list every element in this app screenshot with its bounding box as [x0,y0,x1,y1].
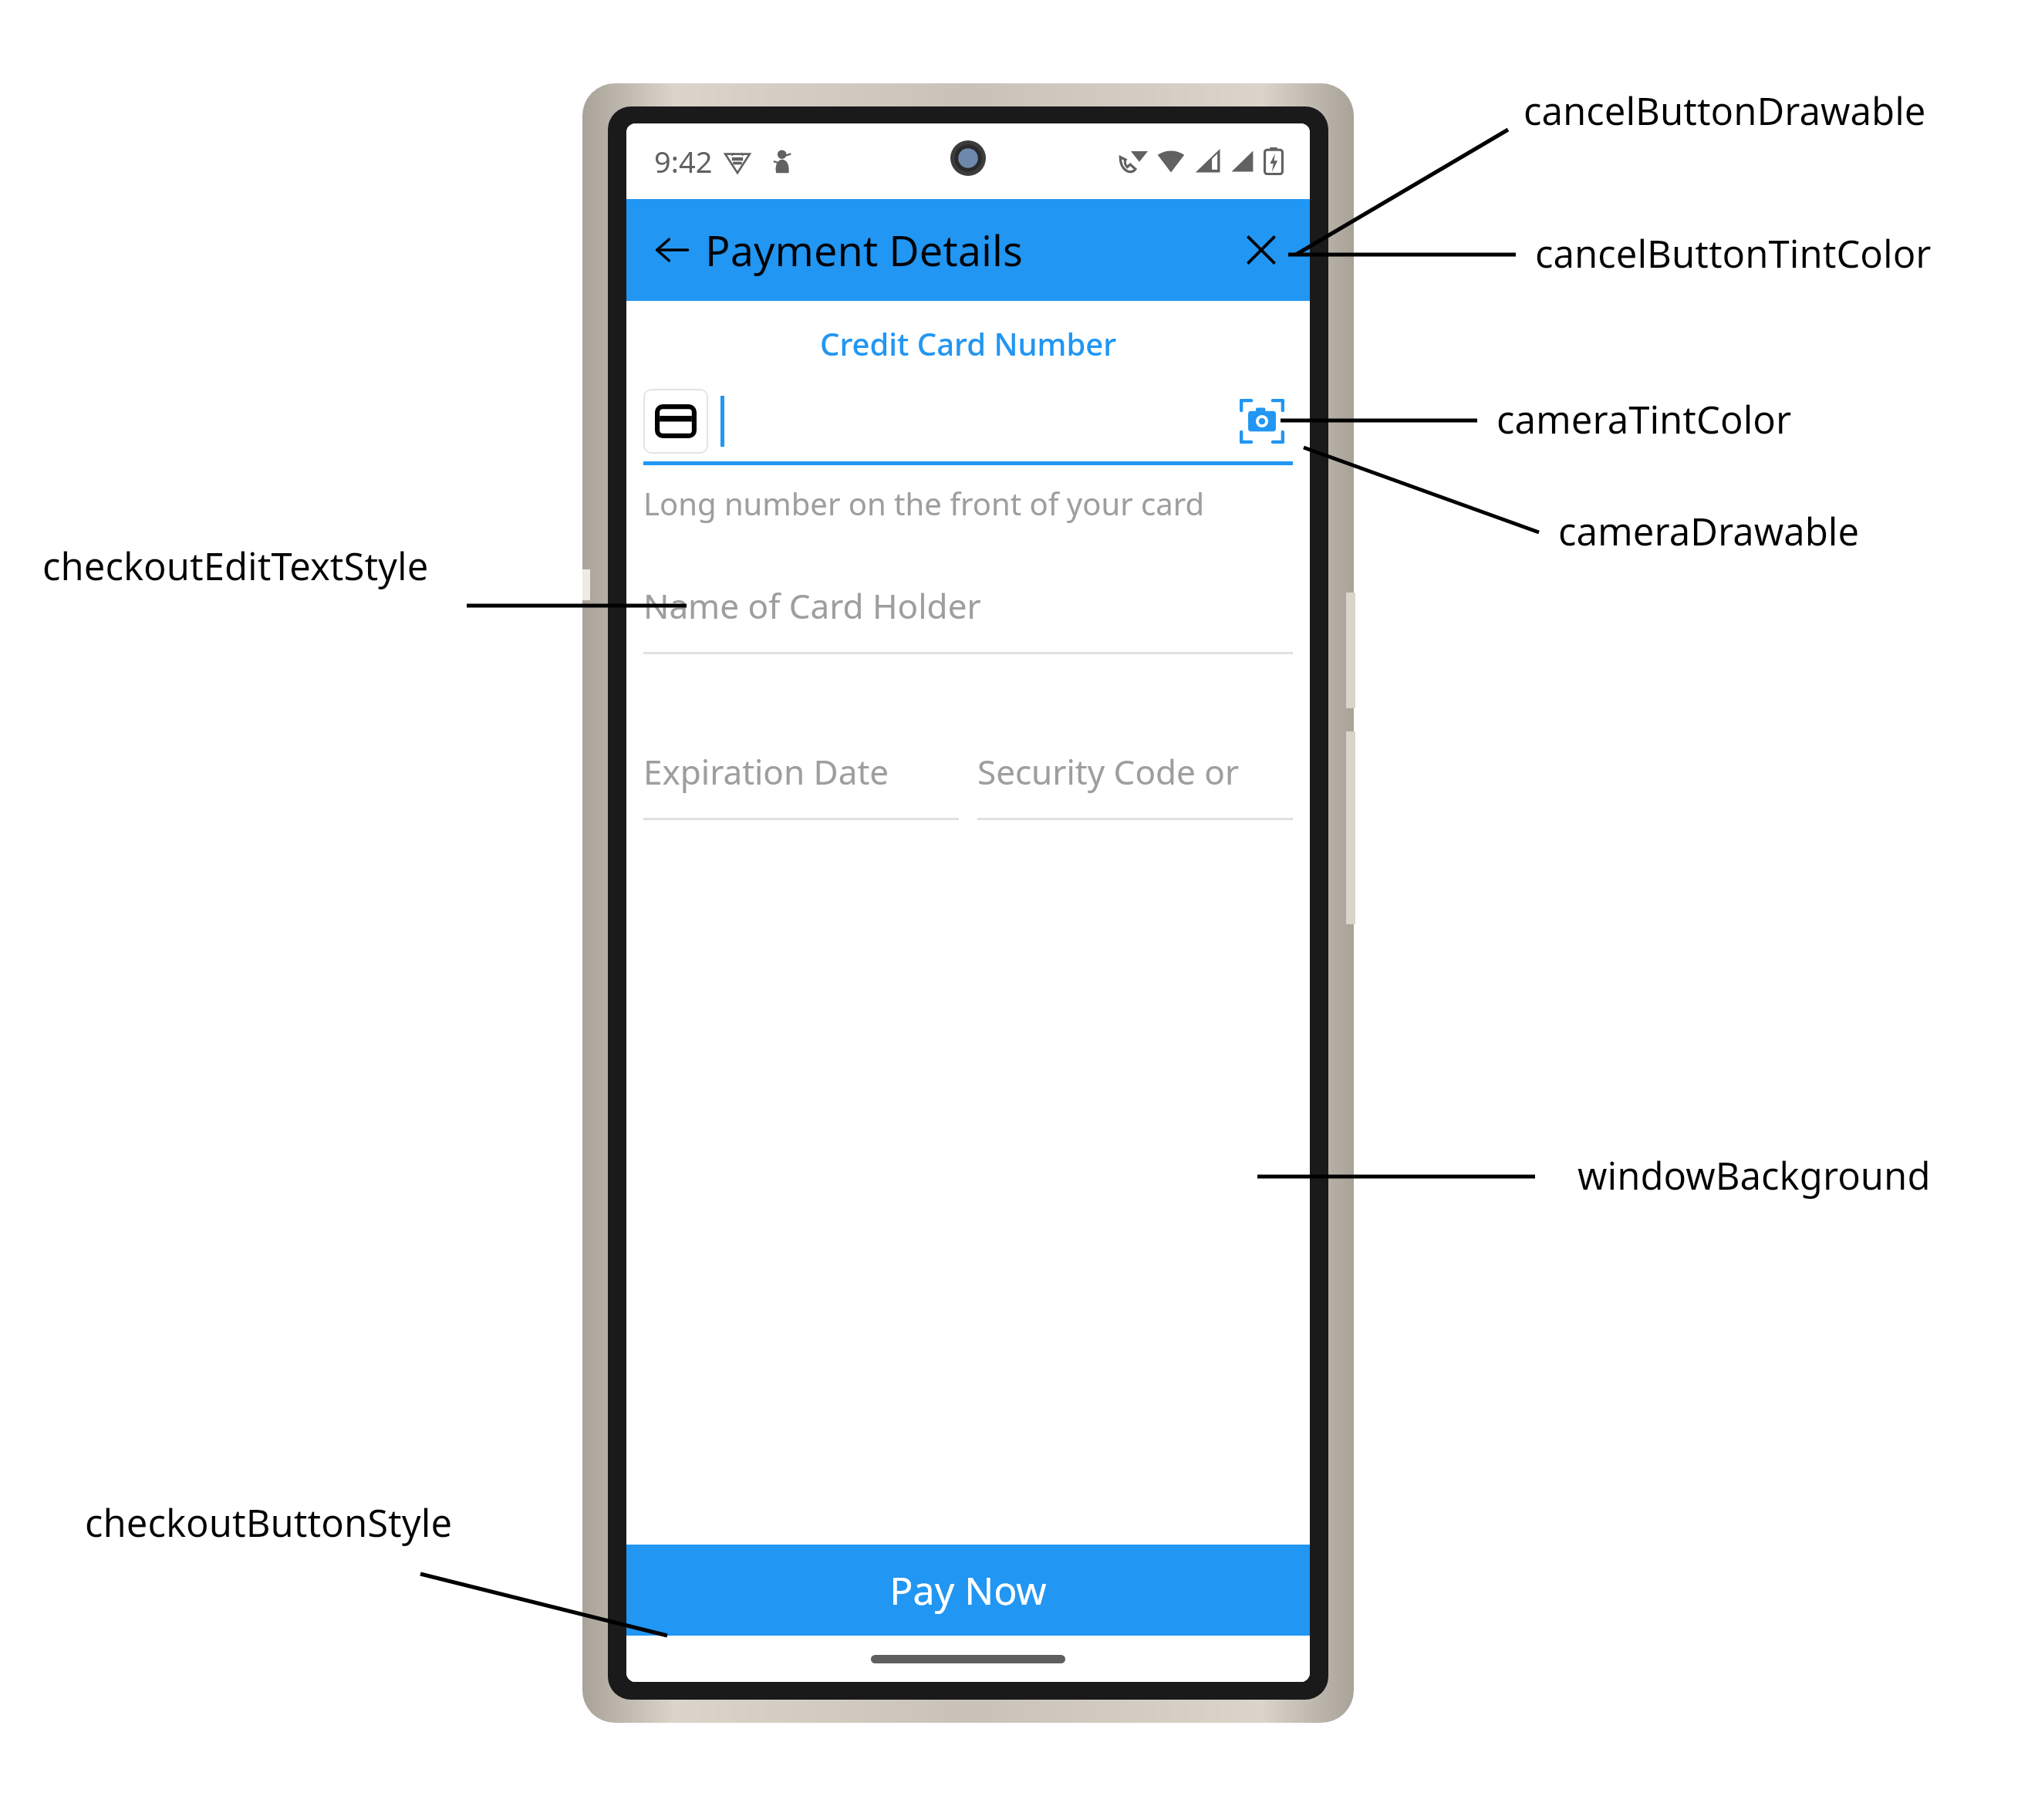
staticText: cameraDrawable [1558,505,1860,557]
button[interactable]: Cancel [1233,221,1290,279]
staticText: Expiration Date [643,748,889,795]
staticText: cancelButtonTintColor [1535,228,1932,279]
staticText: windowBackground [1578,1150,1931,1201]
staticText: Payment Details [705,221,1023,279]
button[interactable]: Scan card with camera [1234,393,1290,449]
button[interactable]: Security Code or C... [977,748,1293,820]
staticText: Security Code or C... [977,748,1293,795]
button[interactable]: Pay Now [626,1545,1310,1636]
button[interactable]: Scan card with camera [643,381,1293,461]
staticText: cancelButtonDrawable [1524,85,1926,137]
button[interactable]: Back [643,221,700,279]
button[interactable]: Expiration Date [643,748,959,820]
staticText: Name of Card Holder [643,582,981,629]
staticText: checkoutButtonStyle [85,1497,453,1548]
staticText: 9:42 [654,141,713,181]
staticText: Credit Card Number [820,322,1117,364]
button[interactable]: Name of Card Holder [643,582,1293,654]
staticText: Pay Now [889,1564,1047,1616]
staticText: cameraTintColor [1497,393,1792,445]
staticText: Long number on the front of your card [643,482,1205,524]
staticText: checkoutEditTextStyle [42,540,429,592]
